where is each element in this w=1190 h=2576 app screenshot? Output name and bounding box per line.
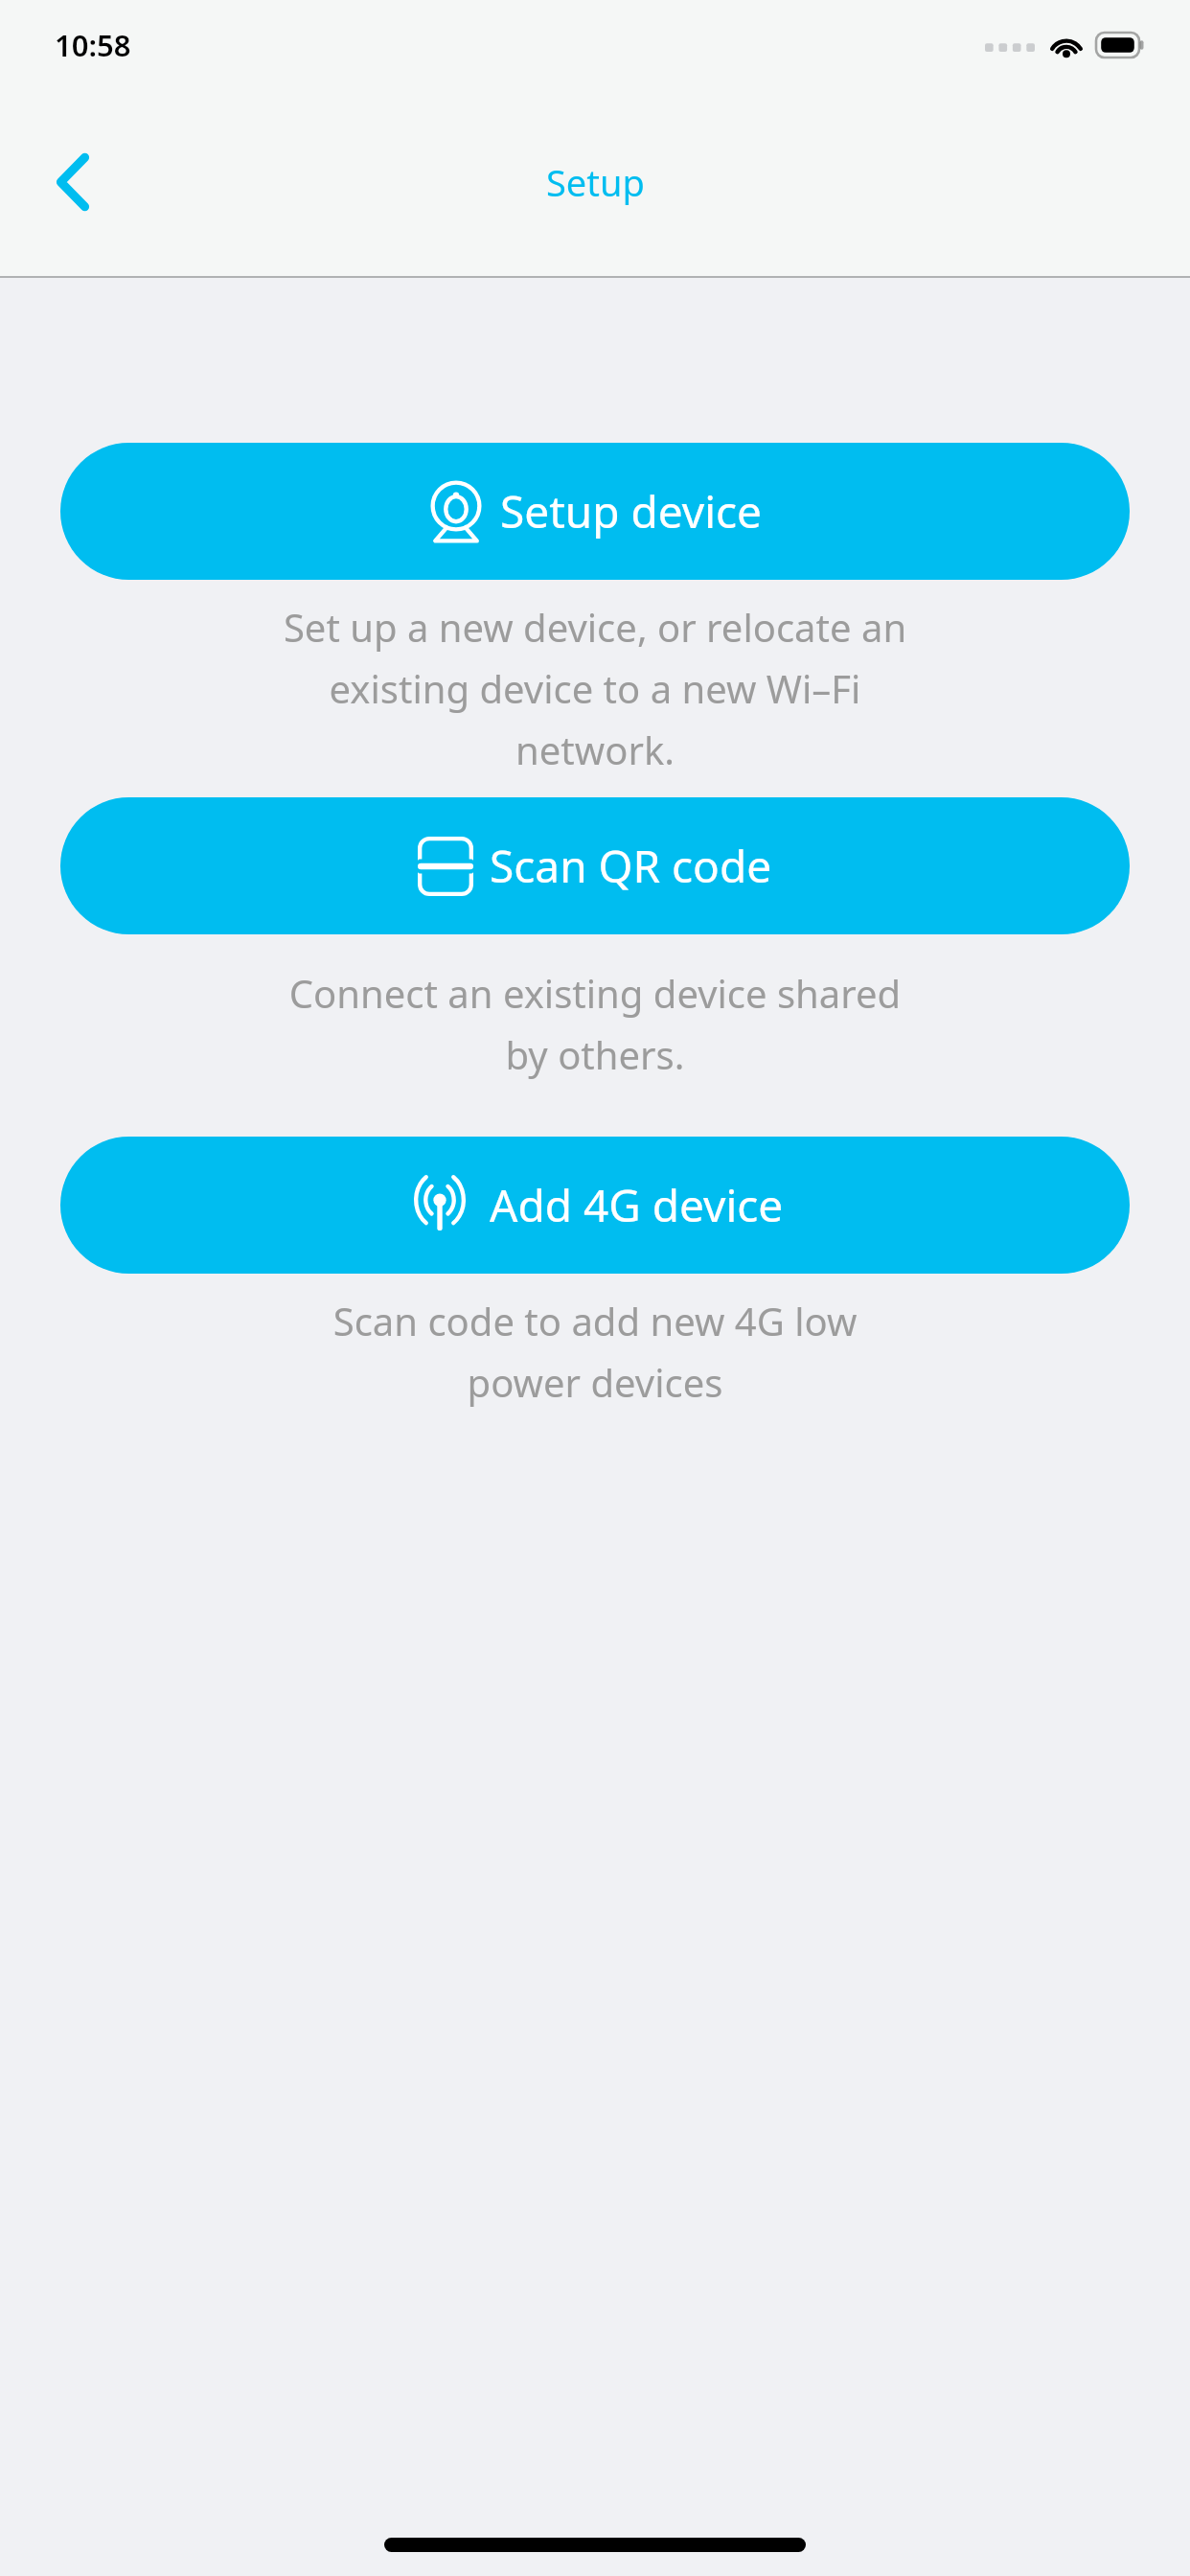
staticText: Scan QR code [490, 836, 772, 896]
button[interactable]: Add 4G device [60, 1137, 1130, 1274]
button[interactable]: Scan QR code [60, 797, 1130, 934]
staticText: Scan code to add new 4G low power device… [105, 1295, 1085, 1409]
staticText: Setup device [500, 481, 763, 541]
staticText: Setup [546, 157, 645, 207]
staticText: 10:58 [55, 25, 131, 65]
staticText: Connect an existing device shared by oth… [105, 967, 1085, 1081]
button[interactable]: Back [34, 144, 111, 220]
staticText: Add 4G device [490, 1175, 784, 1235]
button[interactable]: Setup device [60, 443, 1130, 580]
staticText: Set up a new device, or relocate an exis… [105, 601, 1085, 776]
